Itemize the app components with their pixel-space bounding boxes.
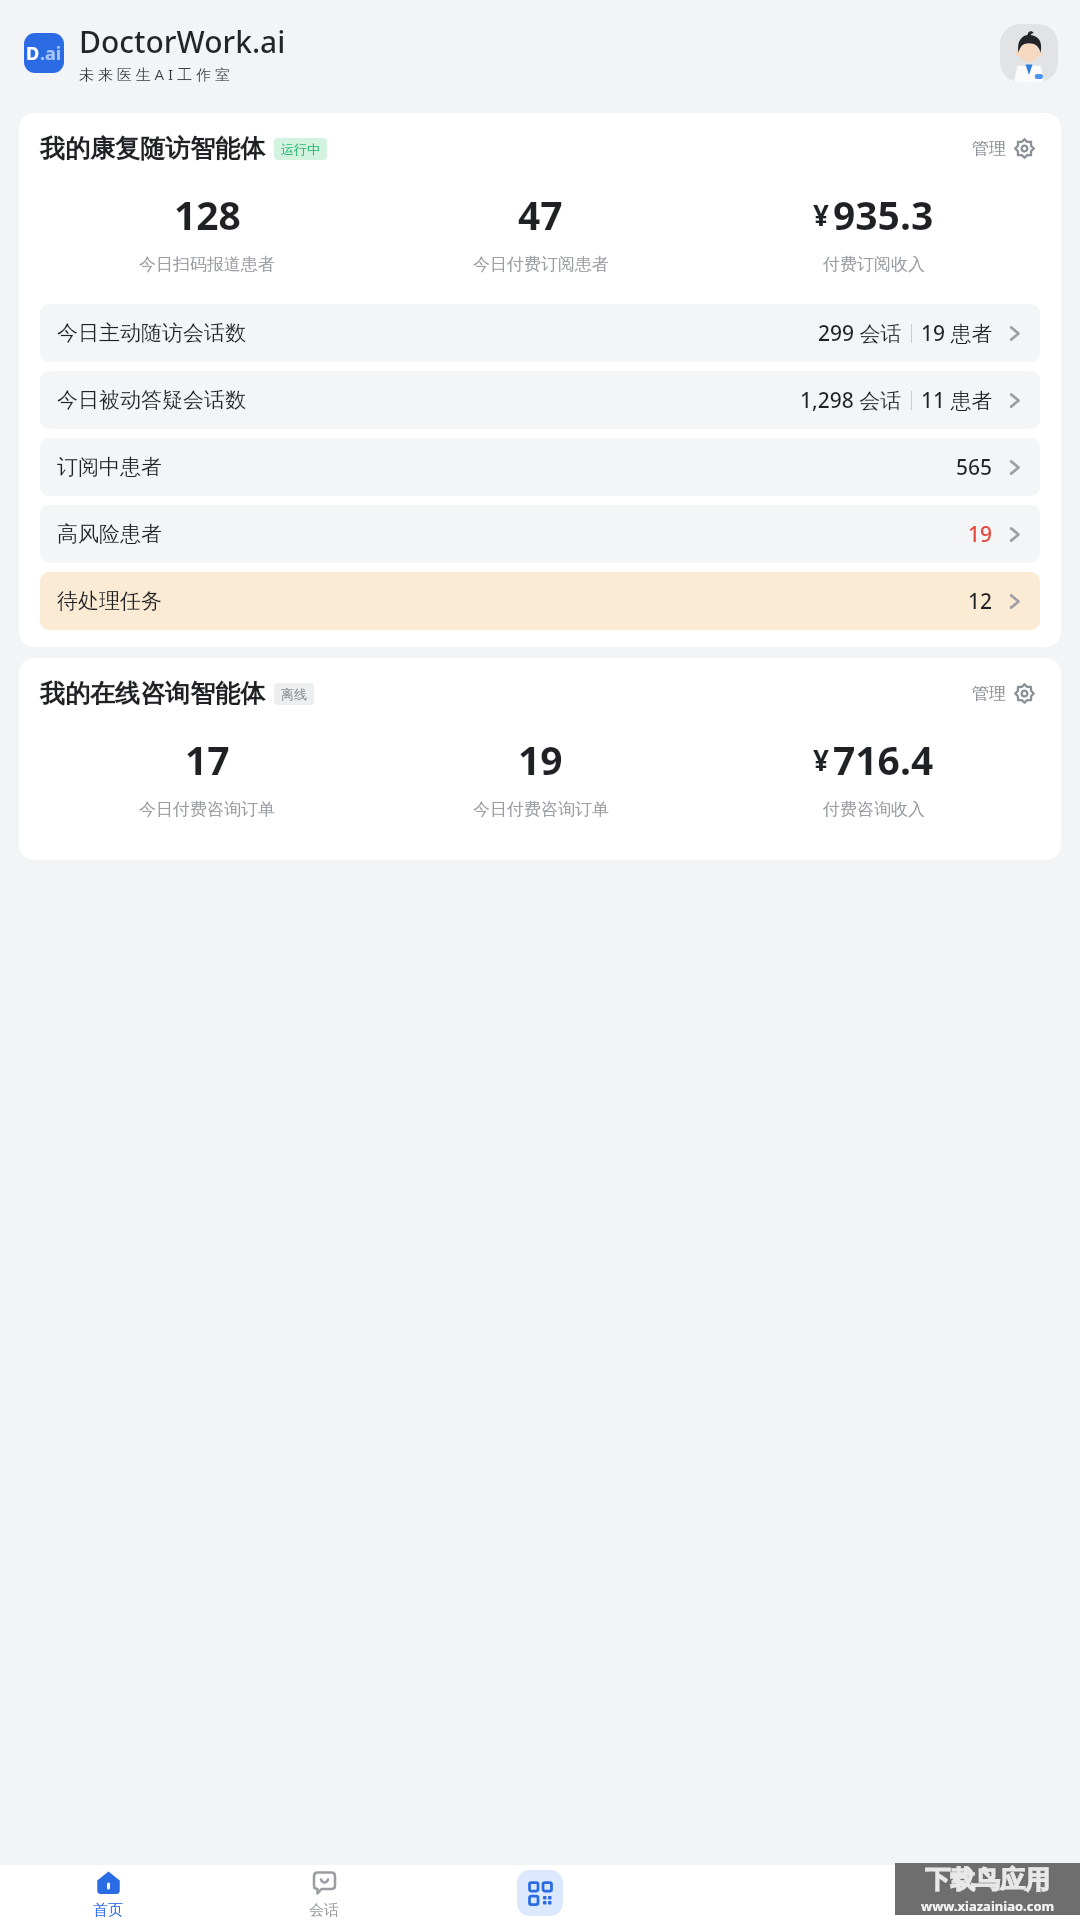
staticText: 未 来 医 生 A I 工 作 室: [79, 64, 230, 84]
staticText: 17: [185, 733, 230, 786]
button[interactable]: 今日被动答疑会话数: [40, 371, 1040, 429]
other: Settings: [1013, 682, 1036, 705]
staticText: 付费订阅收入: [823, 254, 925, 275]
staticText: 离线: [281, 686, 307, 702]
staticText: 716.4: [833, 733, 934, 786]
staticText: .ai: [40, 41, 62, 66]
staticText: 订阅中患者: [57, 454, 162, 480]
staticText: 935.3: [833, 188, 934, 241]
staticText: 12: [968, 587, 993, 616]
staticText: 我的康复随访智能体: [40, 133, 265, 164]
staticText: ¥: [813, 741, 830, 779]
staticText: 下载鸟应用: [925, 1864, 1050, 1895]
staticText: 今日扫码报道患者: [139, 254, 275, 275]
staticText: 今日付费咨询订单: [139, 799, 275, 820]
staticText: 今日被动答疑会话数: [57, 387, 246, 413]
button[interactable]: 管理: [968, 133, 1040, 164]
staticText: www.xiazainiao.com: [921, 1897, 1055, 1915]
button[interactable]: 今日主动随访会话数: [40, 304, 1040, 362]
staticText: 19: [968, 520, 993, 549]
staticText: 19 患者: [921, 319, 993, 348]
button[interactable]: Scan QR code: [517, 1870, 563, 1916]
staticText: 我的在线咨询智能体: [40, 678, 265, 709]
staticText: 128: [174, 188, 241, 241]
staticText: 299 会话: [818, 319, 902, 348]
staticText: 今日付费订阅患者: [473, 254, 609, 275]
staticText: 待处理任务: [57, 588, 162, 614]
staticText: 付费咨询收入: [823, 799, 925, 820]
staticText: 管理: [972, 138, 1006, 159]
staticText: 今日付费咨询订单: [473, 799, 609, 820]
staticText: 管理: [972, 683, 1006, 704]
button[interactable]: 订阅中患者: [40, 438, 1040, 496]
staticText: 565: [956, 453, 993, 482]
button[interactable]: 管理: [968, 678, 1040, 709]
staticText: 会话: [309, 1901, 339, 1920]
other: Chat: [312, 1870, 337, 1895]
staticText: 高风险患者: [57, 521, 162, 547]
staticText: 19: [518, 733, 563, 786]
button[interactable]: Home: [0, 1865, 216, 1920]
button[interactable]: 待处理任务: [40, 572, 1040, 630]
staticText: D: [26, 41, 40, 66]
staticText: 运行中: [281, 141, 320, 157]
button[interactable]: Chat: [216, 1865, 432, 1920]
staticText: 1,298 会话: [800, 386, 902, 415]
staticText: 今日主动随访会话数: [57, 320, 246, 346]
button[interactable]: D: [24, 33, 64, 73]
staticText: 首页: [93, 1901, 123, 1920]
staticText: ¥: [813, 196, 830, 234]
other: Home: [96, 1870, 121, 1895]
button[interactable]: Profile: [1000, 24, 1058, 82]
other: Settings: [1013, 137, 1036, 160]
button[interactable]: 高风险患者: [40, 505, 1040, 563]
staticText: 11 患者: [921, 386, 993, 415]
staticText: DoctorWork.ai: [79, 21, 286, 62]
staticText: 47: [518, 188, 563, 241]
